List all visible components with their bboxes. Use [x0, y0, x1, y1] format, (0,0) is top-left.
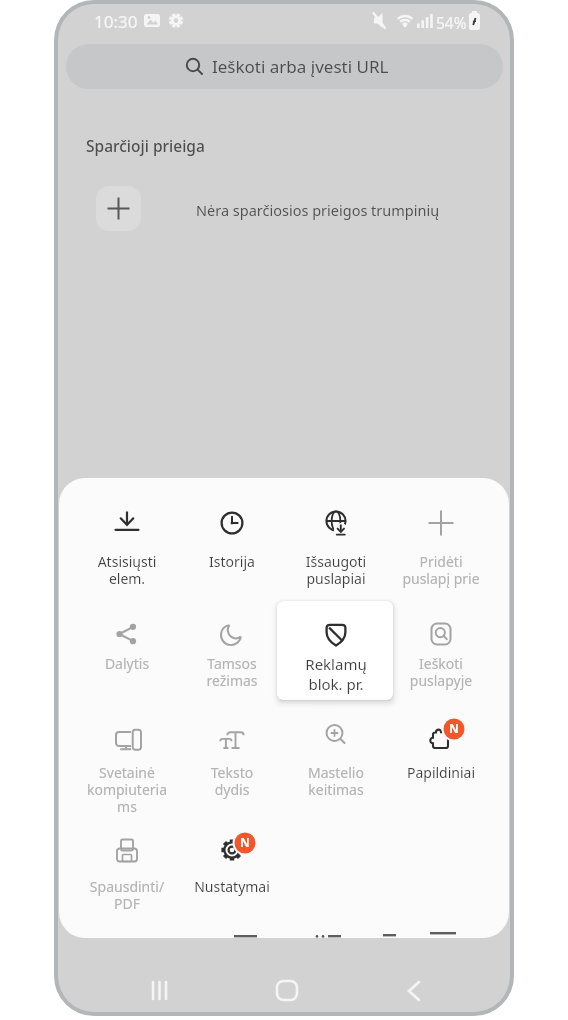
staticText: Istorija: [180, 552, 284, 571]
staticText: Pridėti puslapį prie: [389, 552, 493, 588]
staticText: Mastelio keitimas: [284, 763, 388, 799]
staticText: N: [447, 721, 461, 737]
button[interactable]: Reklamų blok. pr.: [284, 611, 388, 715]
button[interactable]: [399, 974, 439, 1010]
staticText: Nėra sparčiosios prieigos trumpinių: [196, 200, 440, 220]
staticText: Svetainė kompiuteria ms: [75, 763, 179, 816]
button[interactable]: Pridėti puslapį prie: [389, 500, 493, 604]
button[interactable]: [96, 186, 141, 231]
staticText: Reklamų blok. pr.: [284, 654, 388, 694]
button[interactable]: Teksto dydis: [180, 713, 284, 817]
staticText: Nustatymai: [180, 877, 284, 896]
staticText: Atsisiųsti elem.: [75, 552, 179, 588]
button[interactable]: N: [180, 827, 284, 931]
staticText: 54%: [436, 12, 467, 33]
button[interactable]: Svetainė kompiuteria ms: [75, 713, 179, 817]
staticText: Išsaugoti puslapiai: [284, 552, 388, 588]
button[interactable]: Ieškoti puslapyje: [389, 611, 493, 715]
button[interactable]: Dalytis: [75, 611, 179, 715]
staticText: Papildiniai: [389, 763, 493, 782]
button[interactable]: Tamsos režimas: [180, 611, 284, 715]
staticText: Sparčioji prieiga: [86, 135, 205, 156]
button[interactable]: Mastelio keitimas: [284, 713, 388, 817]
staticText: Ieškoti puslapyje: [389, 654, 493, 690]
staticText: Dalytis: [75, 654, 179, 673]
button[interactable]: [267, 974, 307, 1010]
staticText: Teksto dydis: [180, 763, 284, 799]
button[interactable]: Atsisiųsti elem.: [75, 500, 179, 604]
staticText: Tamsos režimas: [180, 654, 284, 690]
button[interactable]: Išsaugoti puslapiai: [284, 500, 388, 604]
button[interactable]: Spausdinti/ PDF: [75, 827, 179, 931]
staticText: N: [238, 835, 252, 851]
staticText: Ieškoti arba įvesti URL: [212, 55, 389, 78]
button[interactable]: Ieškoti arba įvesti URL: [66, 44, 503, 89]
button[interactable]: N: [389, 713, 493, 817]
staticText: Spausdinti/ PDF: [75, 877, 179, 913]
button[interactable]: [138, 974, 178, 1010]
staticText: 10:30: [94, 10, 138, 33]
button[interactable]: Istorija: [180, 500, 284, 604]
